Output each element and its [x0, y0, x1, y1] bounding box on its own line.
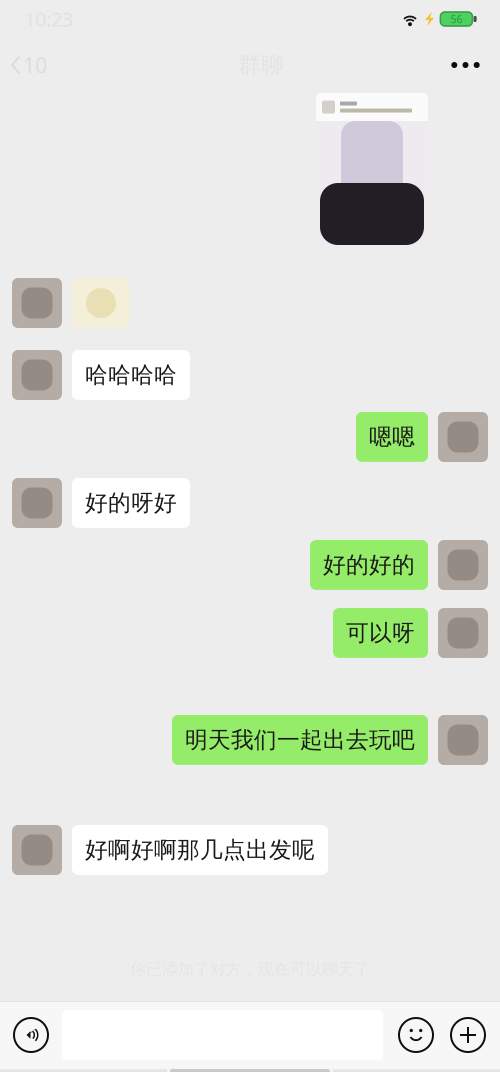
staticText: 好的呀好 [85, 489, 177, 517]
staticText: 可以呀 [346, 619, 415, 647]
staticText: 56 [450, 12, 462, 26]
staticText: 好的好的 [323, 551, 415, 579]
button[interactable]: More options [451, 1018, 485, 1052]
button[interactable]: More [442, 43, 489, 87]
staticText: 明天我们一起出去玩吧 [185, 726, 415, 754]
staticText: 10 [23, 51, 47, 79]
staticText: 好啊好啊那几点出发呢 [85, 836, 315, 864]
button[interactable]: Emoji [399, 1018, 433, 1052]
staticText: 10:23 [24, 6, 73, 32]
staticText: 哈哈哈哈 [85, 361, 177, 389]
staticText: 群聊 [238, 51, 284, 79]
staticText: 嗯嗯 [369, 423, 415, 451]
button[interactable]: Voice message [14, 1018, 48, 1052]
button[interactable]: Back [0, 43, 80, 87]
